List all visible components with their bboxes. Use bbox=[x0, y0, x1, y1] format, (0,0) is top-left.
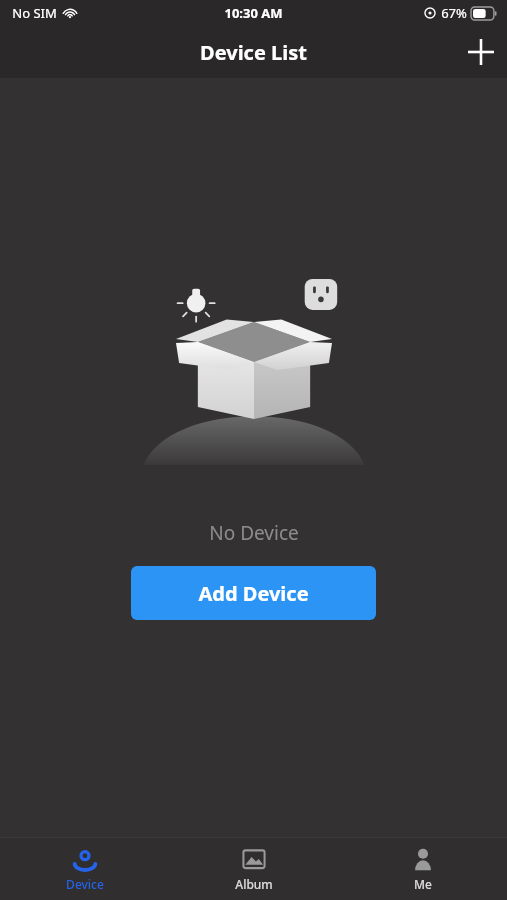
button[interactable]: Device bbox=[0, 838, 169, 900]
staticText: No SIM bbox=[12, 4, 57, 22]
staticText: 67% bbox=[441, 4, 467, 22]
staticText: No Device bbox=[209, 520, 299, 546]
staticText: Device List bbox=[200, 39, 307, 66]
button[interactable]: Me bbox=[338, 838, 507, 900]
button[interactable]: Album bbox=[169, 838, 338, 900]
staticText: Device bbox=[66, 876, 104, 892]
button[interactable]: Add device bbox=[455, 26, 507, 78]
staticText: 10:30 AM bbox=[224, 4, 283, 22]
staticText: Me bbox=[414, 876, 432, 892]
staticText: Album bbox=[235, 876, 273, 892]
staticText: Add Device bbox=[198, 580, 309, 607]
button[interactable]: Add Device bbox=[131, 566, 376, 620]
